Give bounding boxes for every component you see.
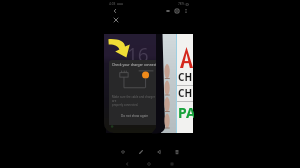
button[interactable]: Home bbox=[144, 159, 154, 168]
button[interactable]: Delete bbox=[171, 146, 182, 157]
button[interactable]: Back bbox=[110, 6, 120, 16]
staticText: CH bbox=[178, 70, 194, 84]
staticText: 78% bbox=[178, 2, 185, 6]
button[interactable]: Favorite bbox=[117, 146, 128, 157]
button[interactable]: More options bbox=[181, 6, 190, 15]
button[interactable]: Cast bbox=[163, 6, 172, 15]
button[interactable]: Do not show again bbox=[121, 114, 149, 118]
staticText: Do not show again bbox=[121, 114, 149, 118]
button[interactable]: Share bbox=[153, 146, 164, 157]
button[interactable]: Back bbox=[122, 159, 132, 168]
button[interactable]: Recents bbox=[167, 159, 177, 168]
button[interactable]: Close bbox=[111, 15, 121, 25]
staticText: 4:03 bbox=[109, 2, 116, 6]
staticText: Make sure the cable and charger are prop… bbox=[112, 95, 158, 107]
staticText: 16 bbox=[127, 42, 149, 68]
button[interactable]: Edit bbox=[135, 146, 146, 157]
button[interactable]: Photo bbox=[106, 34, 193, 133]
staticText: Check your charger connection bbox=[112, 62, 158, 67]
staticText: CH bbox=[178, 86, 194, 100]
staticText: PA bbox=[178, 103, 194, 122]
button[interactable]: Google Lens bbox=[172, 6, 181, 15]
